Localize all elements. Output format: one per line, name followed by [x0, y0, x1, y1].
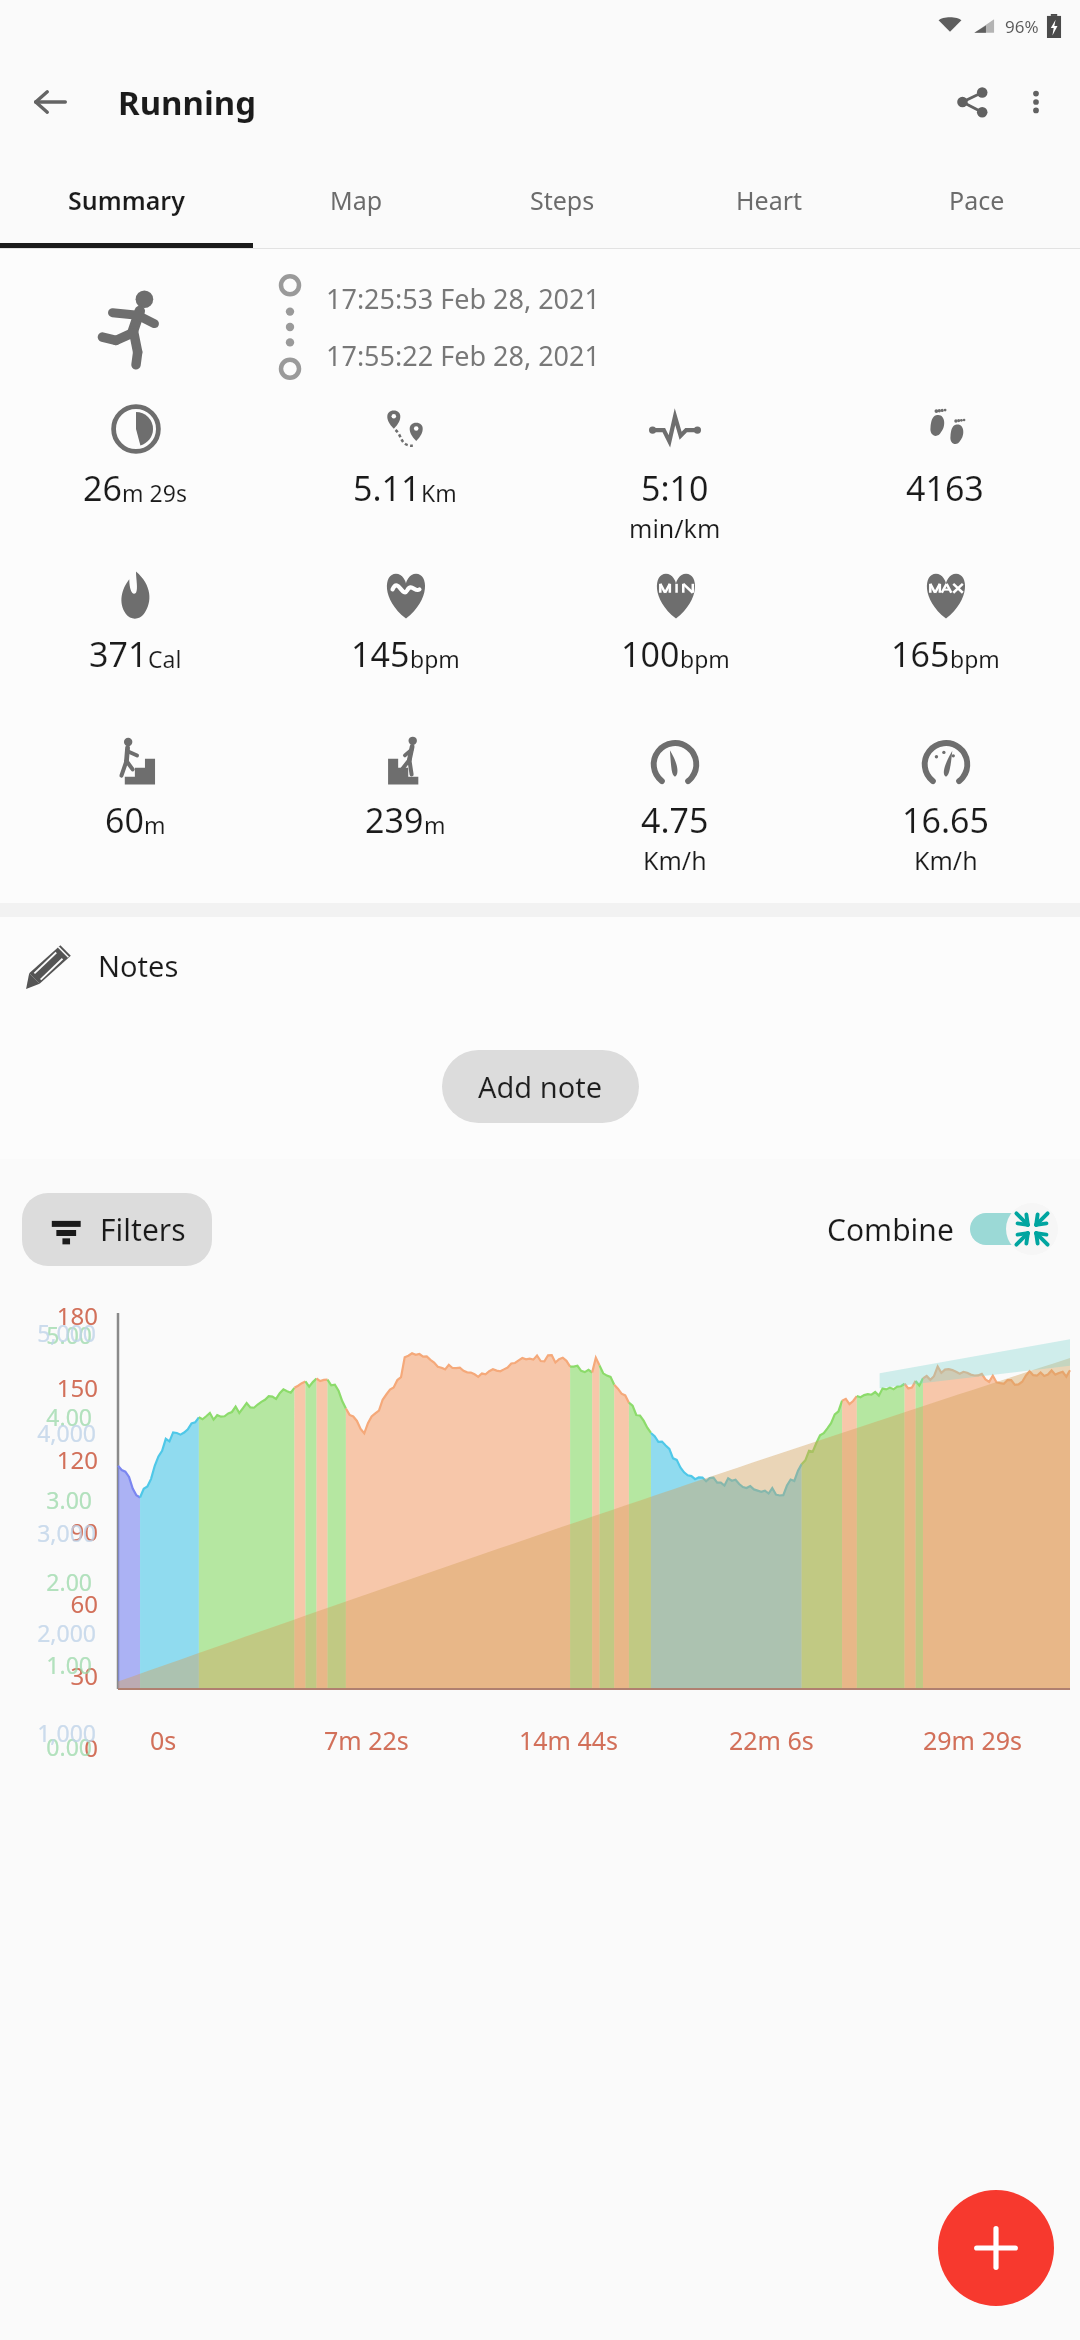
staticText: bpm [950, 643, 1000, 674]
button[interactable]: Map [253, 152, 459, 248]
staticText: 60 [0, 1587, 98, 1620]
staticText: m [424, 809, 446, 840]
button[interactable]: More options [1004, 70, 1068, 134]
staticText: bpm [680, 643, 730, 674]
staticText: 2,000 [0, 1617, 96, 1648]
staticText: m [144, 809, 166, 840]
staticText: 90 [0, 1515, 98, 1548]
staticText: 165 [891, 631, 950, 677]
staticText: Combine [827, 1209, 954, 1250]
staticText: 371 [89, 631, 148, 677]
staticText: 4163 [906, 465, 984, 511]
staticText: Notes [98, 946, 179, 985]
staticText: 3.00 [0, 1484, 92, 1515]
staticText: 17:25:53 Feb 28, 2021 [326, 280, 600, 317]
button[interactable]: Share [940, 70, 1004, 134]
staticText: 22m 6s [729, 1723, 814, 1757]
staticText: 17:55:22 Feb 28, 2021 [326, 337, 600, 374]
staticText: 16.65 [902, 797, 989, 843]
button[interactable]: Heart [666, 152, 873, 248]
staticText: 0.00 [0, 1731, 92, 1762]
staticText: 4.00 [0, 1401, 92, 1432]
staticText: Km/h [914, 843, 978, 877]
button[interactable]: Add [938, 2190, 1054, 2306]
staticText: 14m 44s [519, 1723, 619, 1757]
staticText: Km/h [643, 843, 707, 877]
staticText: 150 [0, 1371, 98, 1404]
button[interactable]: Add note [442, 1050, 639, 1123]
staticText: 5.00 [0, 1319, 92, 1350]
button[interactable]: 145 [270, 567, 540, 719]
button[interactable]: 5.11 [270, 401, 540, 553]
button[interactable]: Back [22, 74, 78, 130]
button[interactable]: 371 [0, 567, 270, 719]
staticText: Map [330, 183, 383, 217]
staticText: 26 [83, 465, 122, 511]
staticText: Heart [736, 183, 803, 217]
staticText: Steps [530, 183, 595, 217]
button[interactable]: 165 [810, 567, 1080, 719]
staticText: 96% [1005, 15, 1039, 38]
button[interactable]: Pace [873, 152, 1080, 248]
staticText: Pace [949, 183, 1005, 217]
staticText: Running [118, 80, 257, 125]
staticText: 1,000 [0, 1717, 96, 1748]
staticText: 1.00 [0, 1649, 92, 1680]
staticText: 100 [621, 631, 680, 677]
staticText: 120 [0, 1443, 98, 1476]
button[interactable]: Notes [0, 917, 1080, 1013]
staticText: 30 [0, 1659, 98, 1692]
staticText: 4.75 [641, 797, 709, 843]
staticText: 2.00 [0, 1566, 92, 1597]
button[interactable]: 5:10 [540, 401, 810, 553]
staticText: 5,000 [0, 1317, 96, 1348]
button[interactable]: Summary [0, 152, 253, 248]
staticText: 5.11 [353, 465, 421, 511]
staticText: Add note [478, 1067, 603, 1106]
staticText: 0 [0, 1731, 98, 1764]
button[interactable]: Combine [827, 1201, 1062, 1257]
button[interactable]: Steps [459, 152, 666, 248]
staticText: bpm [410, 643, 460, 674]
button[interactable]: 100 [540, 567, 810, 719]
staticText: 4,000 [0, 1417, 96, 1448]
button[interactable]: Filters [22, 1193, 212, 1266]
staticText: 0s [150, 1723, 177, 1757]
staticText: Filters [100, 1209, 186, 1250]
staticText: m 29 [122, 477, 176, 508]
staticText: 180 [0, 1299, 98, 1332]
staticText: Km [421, 477, 457, 508]
button[interactable]: 4.75 [540, 733, 810, 885]
staticText: 145 [351, 631, 410, 677]
button[interactable]: 4163 [810, 401, 1080, 553]
button[interactable]: 16.65 [810, 733, 1080, 885]
staticText: 3,000 [0, 1517, 96, 1548]
staticText: 5:10 [641, 465, 709, 511]
staticText: min/km [629, 511, 721, 545]
button[interactable]: 26 [0, 401, 270, 553]
staticText: Cal [148, 643, 182, 674]
staticText: s [176, 477, 188, 508]
button[interactable]: 60 [0, 733, 270, 885]
staticText: 29m 29s [923, 1723, 1023, 1757]
staticText: 7m 22s [324, 1723, 409, 1757]
staticText: Summary [68, 183, 185, 217]
staticText: 60 [105, 797, 144, 843]
button[interactable]: 239 [270, 733, 540, 885]
staticText: 239 [365, 797, 424, 843]
